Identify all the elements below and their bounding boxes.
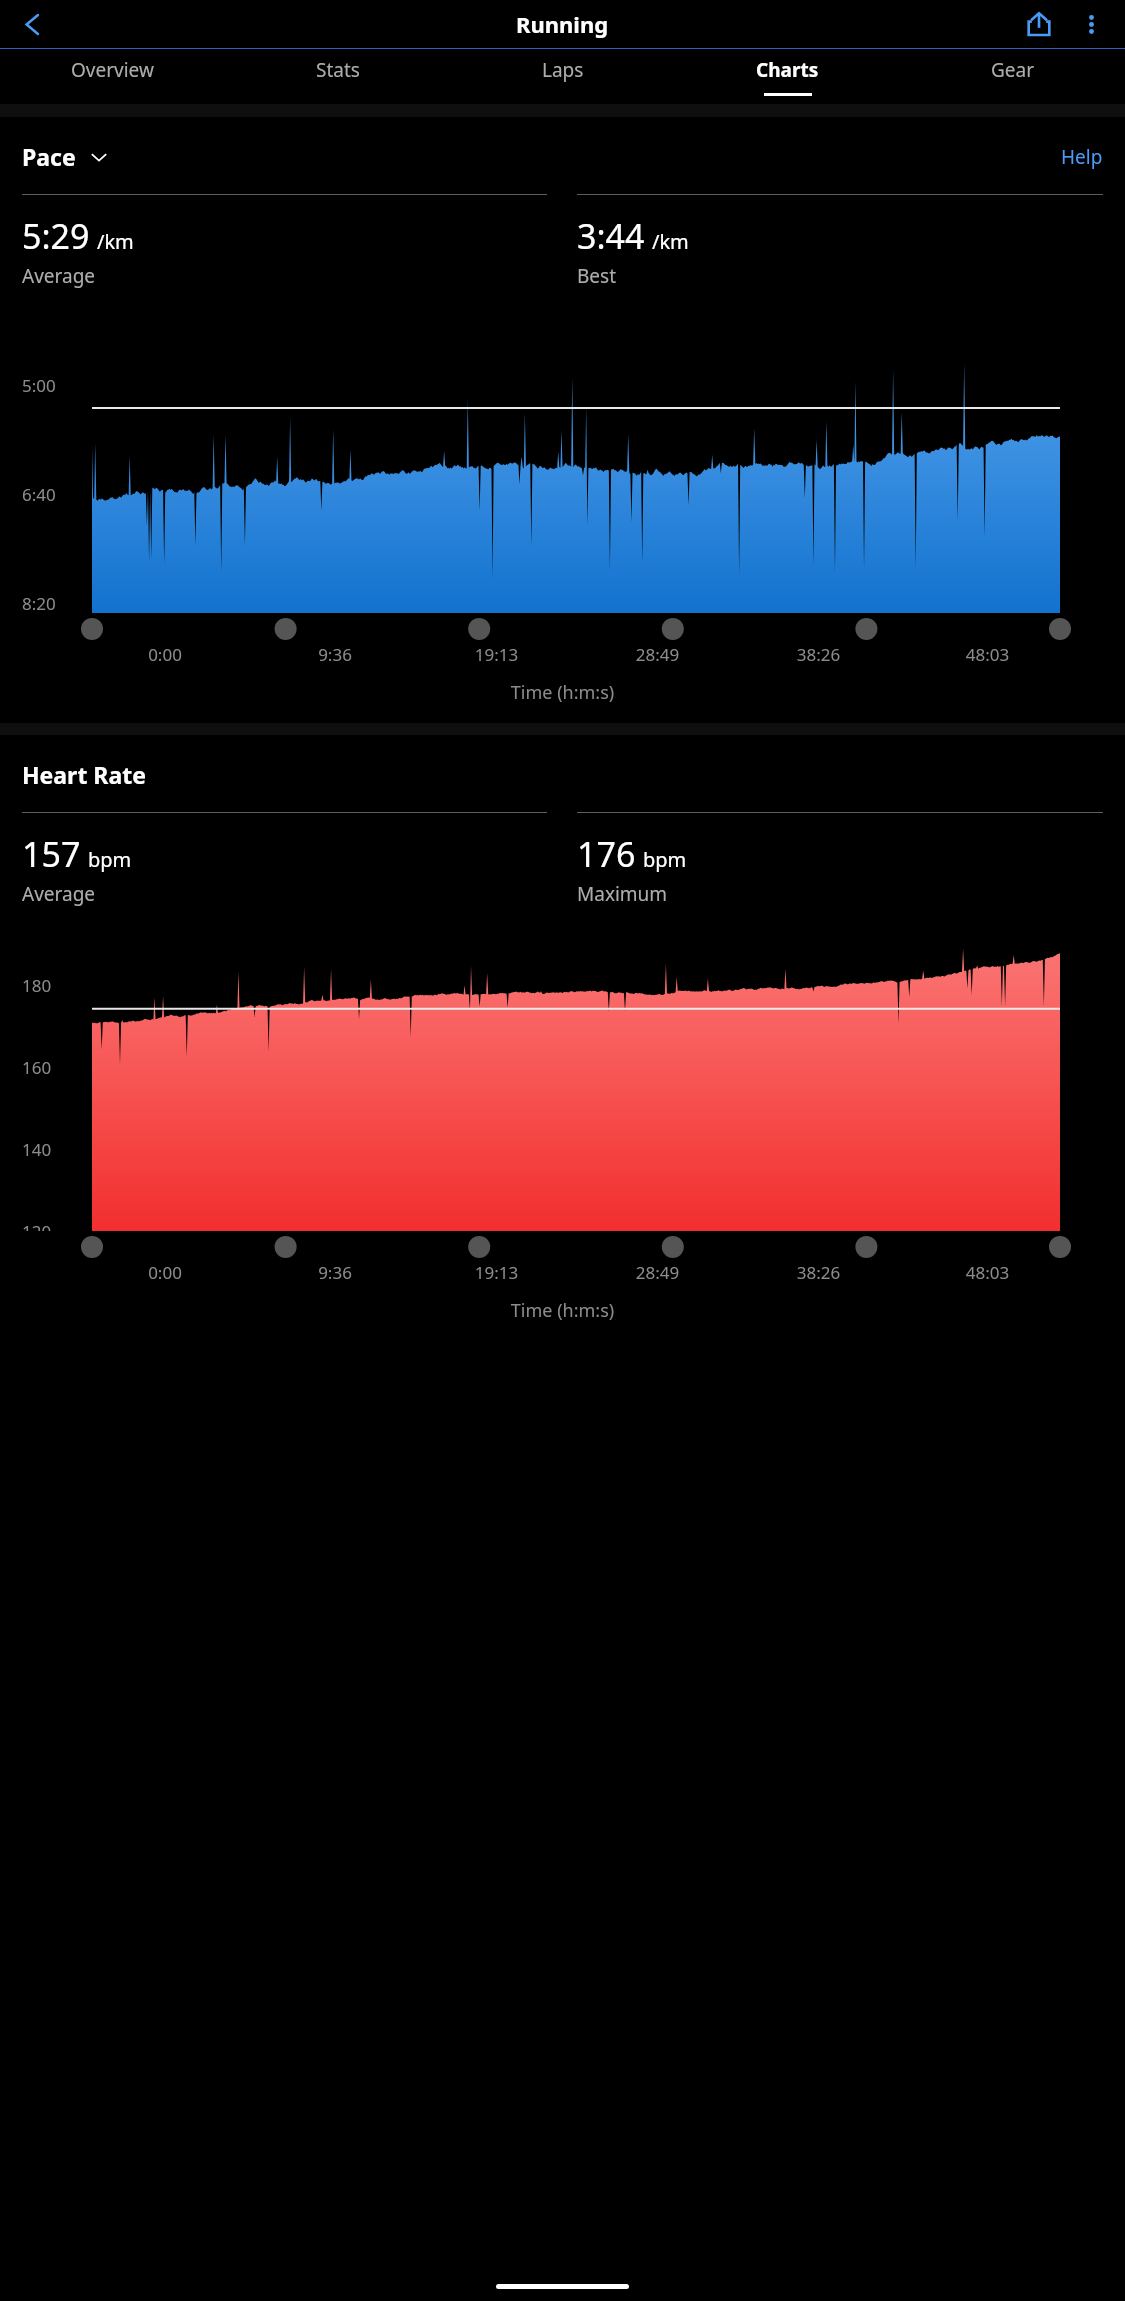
staticText: 28:49: [577, 643, 738, 666]
staticText: 38:26: [738, 1261, 899, 1284]
staticText: 28:49: [577, 1261, 738, 1284]
button[interactable]: Laps: [450, 49, 675, 104]
staticText: 5:00: [22, 374, 56, 397]
staticText: 0:00: [84, 643, 246, 666]
staticText: 5:29: [22, 213, 90, 259]
staticText: 38:26: [738, 643, 899, 666]
staticText: Time (h:m:s): [0, 1298, 1125, 1323]
staticText: 9:36: [254, 1261, 416, 1284]
staticText: 48:03: [907, 643, 1068, 666]
staticText: 120: [22, 1220, 52, 1231]
staticText: 19:13: [416, 643, 577, 666]
button[interactable]: Share: [1013, 0, 1065, 48]
button[interactable]: Help: [1061, 144, 1103, 170]
staticText: /km: [652, 228, 689, 255]
staticText: Heart Rate: [22, 759, 146, 790]
button[interactable]: More options: [1065, 0, 1117, 48]
staticText: 3:44: [577, 213, 645, 259]
staticText: 176: [577, 831, 636, 877]
staticText: Stats: [316, 57, 360, 83]
staticText: Time (h:m:s): [0, 680, 1125, 705]
staticText: 6:40: [22, 483, 56, 506]
staticText: Gear: [991, 57, 1035, 83]
staticText: Average: [22, 881, 96, 907]
staticText: bpm: [88, 846, 132, 873]
staticText: Running: [516, 9, 609, 39]
staticText: Best: [577, 263, 617, 289]
button[interactable]: Charts: [675, 49, 900, 104]
staticText: Average: [22, 263, 96, 289]
staticText: /km: [97, 228, 134, 255]
button[interactable]: Stats: [225, 49, 450, 104]
staticText: 180: [22, 974, 52, 997]
button[interactable]: Back: [6, 0, 58, 48]
staticText: 48:03: [907, 1261, 1068, 1284]
staticText: 9:36: [254, 643, 416, 666]
staticText: Overview: [71, 57, 154, 83]
staticText: Maximum: [577, 881, 668, 907]
staticText: 0:00: [84, 1261, 246, 1284]
staticText: Pace: [22, 141, 76, 172]
button[interactable]: Overview: [0, 49, 225, 104]
staticText: 157: [22, 831, 81, 877]
staticText: bpm: [643, 846, 687, 873]
staticText: Laps: [542, 57, 584, 83]
staticText: 19:13: [416, 1261, 577, 1284]
staticText: 160: [22, 1056, 52, 1079]
button[interactable]: Pace: [22, 141, 108, 172]
button[interactable]: Gear: [900, 49, 1125, 104]
staticText: 8:20: [22, 592, 56, 613]
staticText: Help: [1061, 144, 1103, 170]
staticText: Charts: [756, 57, 819, 83]
staticText: 140: [22, 1138, 52, 1161]
